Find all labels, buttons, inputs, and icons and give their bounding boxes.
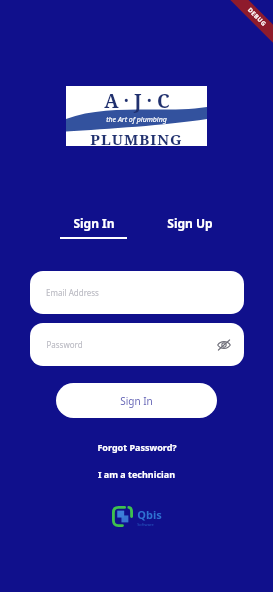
button[interactable]: Password [30, 323, 244, 366]
button[interactable]: I am a technician [90, 465, 183, 483]
staticText: Software [137, 522, 154, 527]
button[interactable]: Sign In [56, 383, 217, 418]
staticText: Sign In [73, 215, 115, 231]
button[interactable]: Sign In [54, 215, 133, 239]
staticText: Sign In [120, 394, 153, 408]
button[interactable]: Sign Up [161, 215, 219, 231]
staticText: Password [46, 339, 83, 350]
button[interactable]: Forgot Password? [89, 438, 185, 456]
staticText: Email Address [46, 287, 99, 298]
staticText: A · J · C [104, 88, 170, 114]
staticText: PLUMBING [90, 129, 183, 146]
staticText: the Art of plumbing [106, 115, 167, 125]
staticText: Qbis [137, 507, 162, 522]
button[interactable]: Qbis Software [110, 504, 164, 529]
staticText: I am a technician [98, 468, 175, 480]
button[interactable]: Show password [214, 335, 234, 355]
staticText: Sign Up [167, 215, 213, 231]
button[interactable]: Email Address [30, 271, 244, 314]
staticText: Forgot Password? [97, 441, 177, 453]
staticText: DEBUG [246, 6, 268, 28]
